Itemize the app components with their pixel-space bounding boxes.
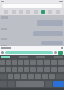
- button[interactable]: Emoji: [54, 51, 57, 54]
- button[interactable]: Active app: [41, 10, 45, 14]
- button[interactable]: Enter: [53, 81, 64, 87]
- button[interactable]: Attach: [1, 51, 4, 54]
- button[interactable]: Message input: [5, 51, 53, 54]
- button[interactable]: Send: [58, 51, 63, 55]
